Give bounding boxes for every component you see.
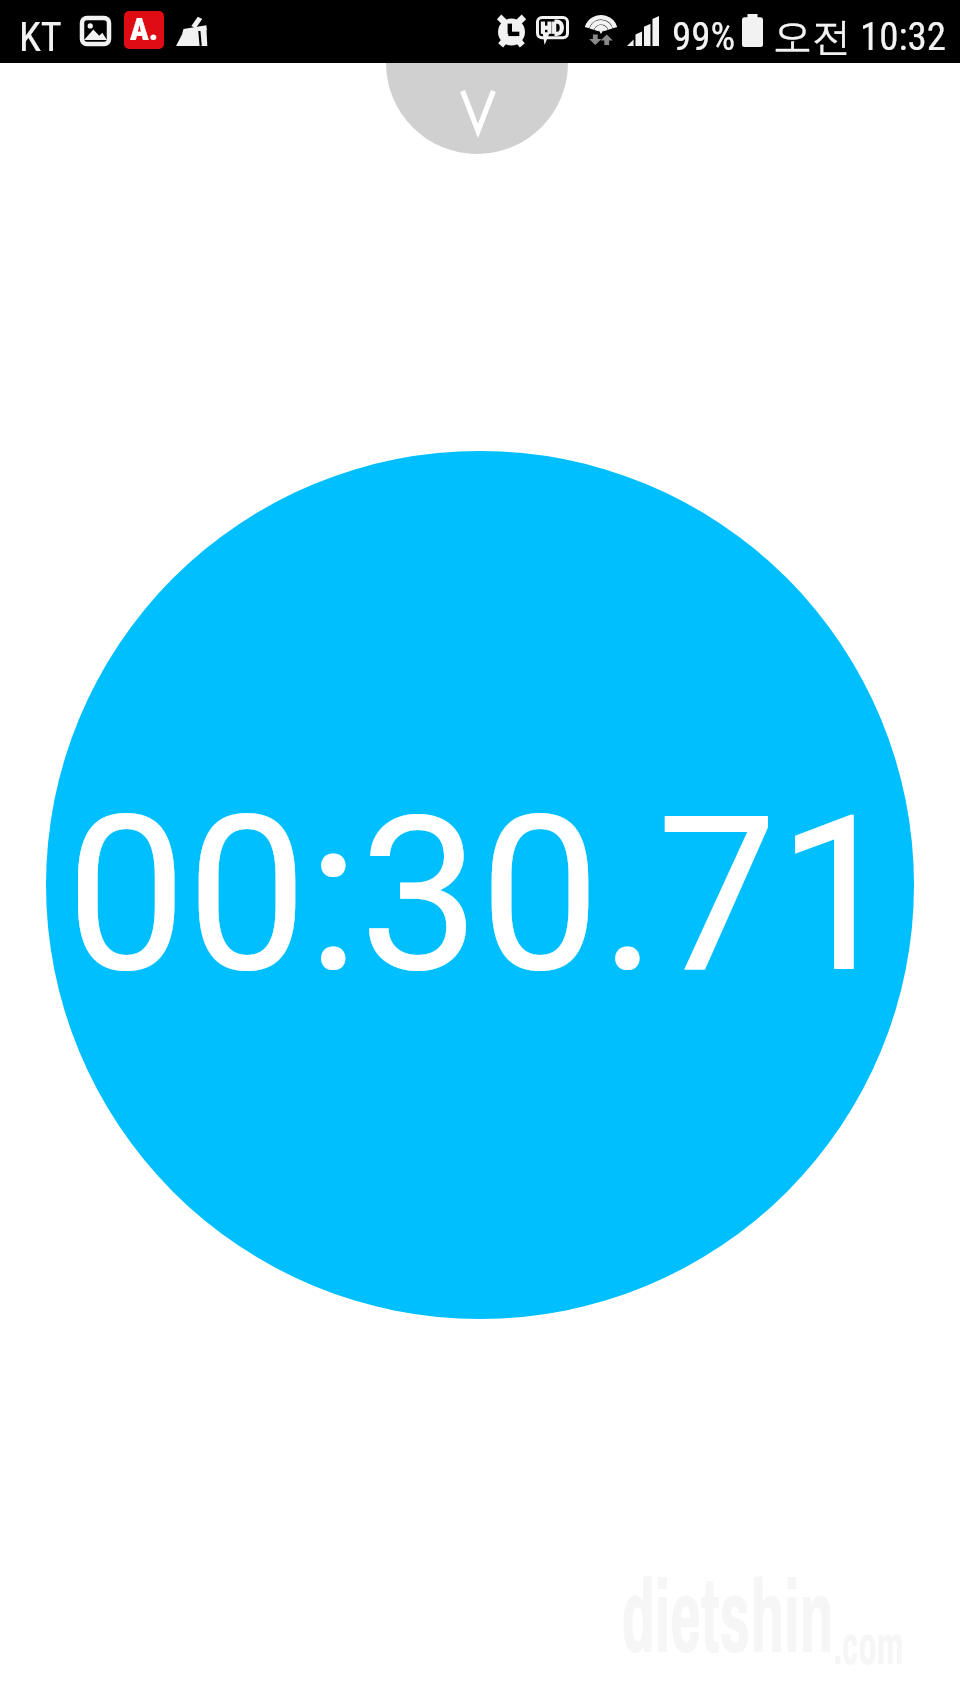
button[interactable]: 00:30.71 — [46, 451, 914, 1319]
staticText: dietshin — [621, 1544, 833, 1684]
staticText: 00:30.71 — [66, 770, 898, 1021]
staticText: A. — [130, 11, 159, 47]
staticText: KT — [19, 14, 62, 61]
button[interactable]: Expand panel — [386, 0, 568, 154]
staticText: 오전 10:32 — [773, 12, 947, 61]
staticText: .com — [833, 1606, 904, 1681]
staticText: 99% — [672, 14, 736, 60]
